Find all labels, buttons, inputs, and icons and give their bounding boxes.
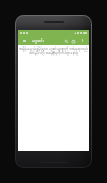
- button[interactable]: Shopping bag: [70, 38, 76, 44]
- button[interactable]: Search: [63, 38, 69, 44]
- staticText: အချိန်မရွေးသုံးစွဲနိုင်သော မဂ္ဂဇင်းများစ…: [18, 46, 89, 55]
- staticText: မဂ္ဂဇင်း: [32, 38, 44, 44]
- button[interactable]: More options: [80, 38, 85, 43]
- staticText: ဖတ်ရှုနိုင်ပါပြီ အခမဲ့ရယူလိုက်ပါဗျာ နော်…: [18, 50, 89, 55]
- button[interactable]: Open navigation menu: [21, 38, 27, 44]
